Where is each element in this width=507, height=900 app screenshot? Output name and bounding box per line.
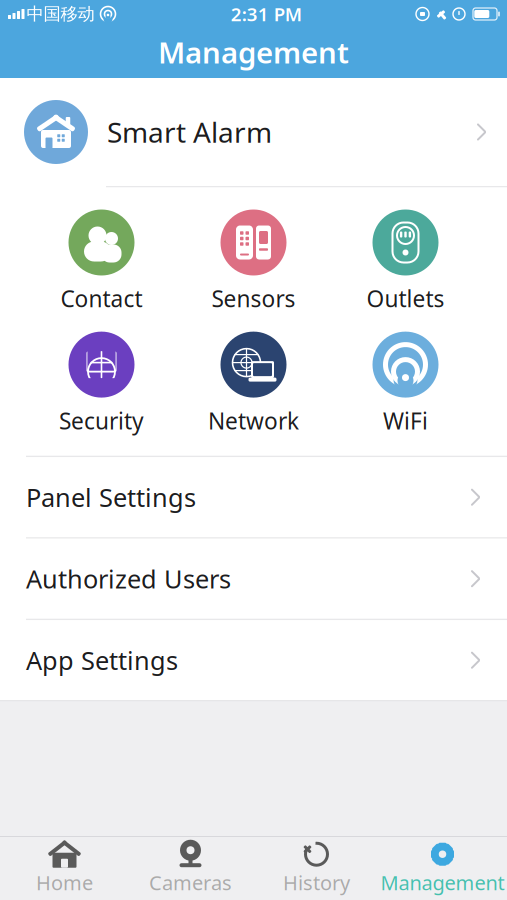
button[interactable]: Cameras — [127, 837, 253, 899]
button[interactable]: Management — [379, 837, 505, 899]
button[interactable]: Panel Settings — [0, 457, 507, 537]
staticText: Authorized Users — [26, 562, 231, 595]
staticText: Cameras — [149, 869, 232, 896]
button[interactable]: WiFi — [335, 328, 475, 440]
staticText: Home — [36, 869, 93, 896]
button[interactable]: Outlets — [335, 205, 475, 318]
button[interactable]: History — [253, 837, 379, 899]
staticText: WiFi — [383, 406, 428, 436]
staticText: Outlets — [366, 283, 444, 314]
button[interactable]: Home — [1, 837, 127, 899]
button[interactable]: Contact — [31, 205, 171, 318]
staticText: 中国移动 — [26, 3, 94, 25]
button[interactable]: Smart Alarm — [0, 78, 507, 186]
button[interactable]: Security — [31, 328, 171, 440]
staticText: App Settings — [26, 643, 178, 677]
staticText: Smart Alarm — [107, 113, 272, 151]
staticText: Network — [208, 406, 299, 436]
button[interactable]: Authorized Users — [0, 539, 507, 619]
staticText: Security — [59, 406, 144, 436]
button[interactable]: Network — [183, 328, 323, 440]
staticText: Management — [158, 32, 349, 71]
staticText: Management — [380, 869, 504, 896]
staticText: 2:31 PM — [231, 2, 302, 26]
staticText: Panel Settings — [26, 480, 196, 514]
staticText: Contact — [60, 283, 142, 314]
staticText: History — [283, 869, 350, 896]
staticText: Sensors — [211, 283, 295, 314]
button[interactable]: Sensors — [183, 205, 323, 318]
button[interactable]: App Settings — [0, 620, 507, 700]
